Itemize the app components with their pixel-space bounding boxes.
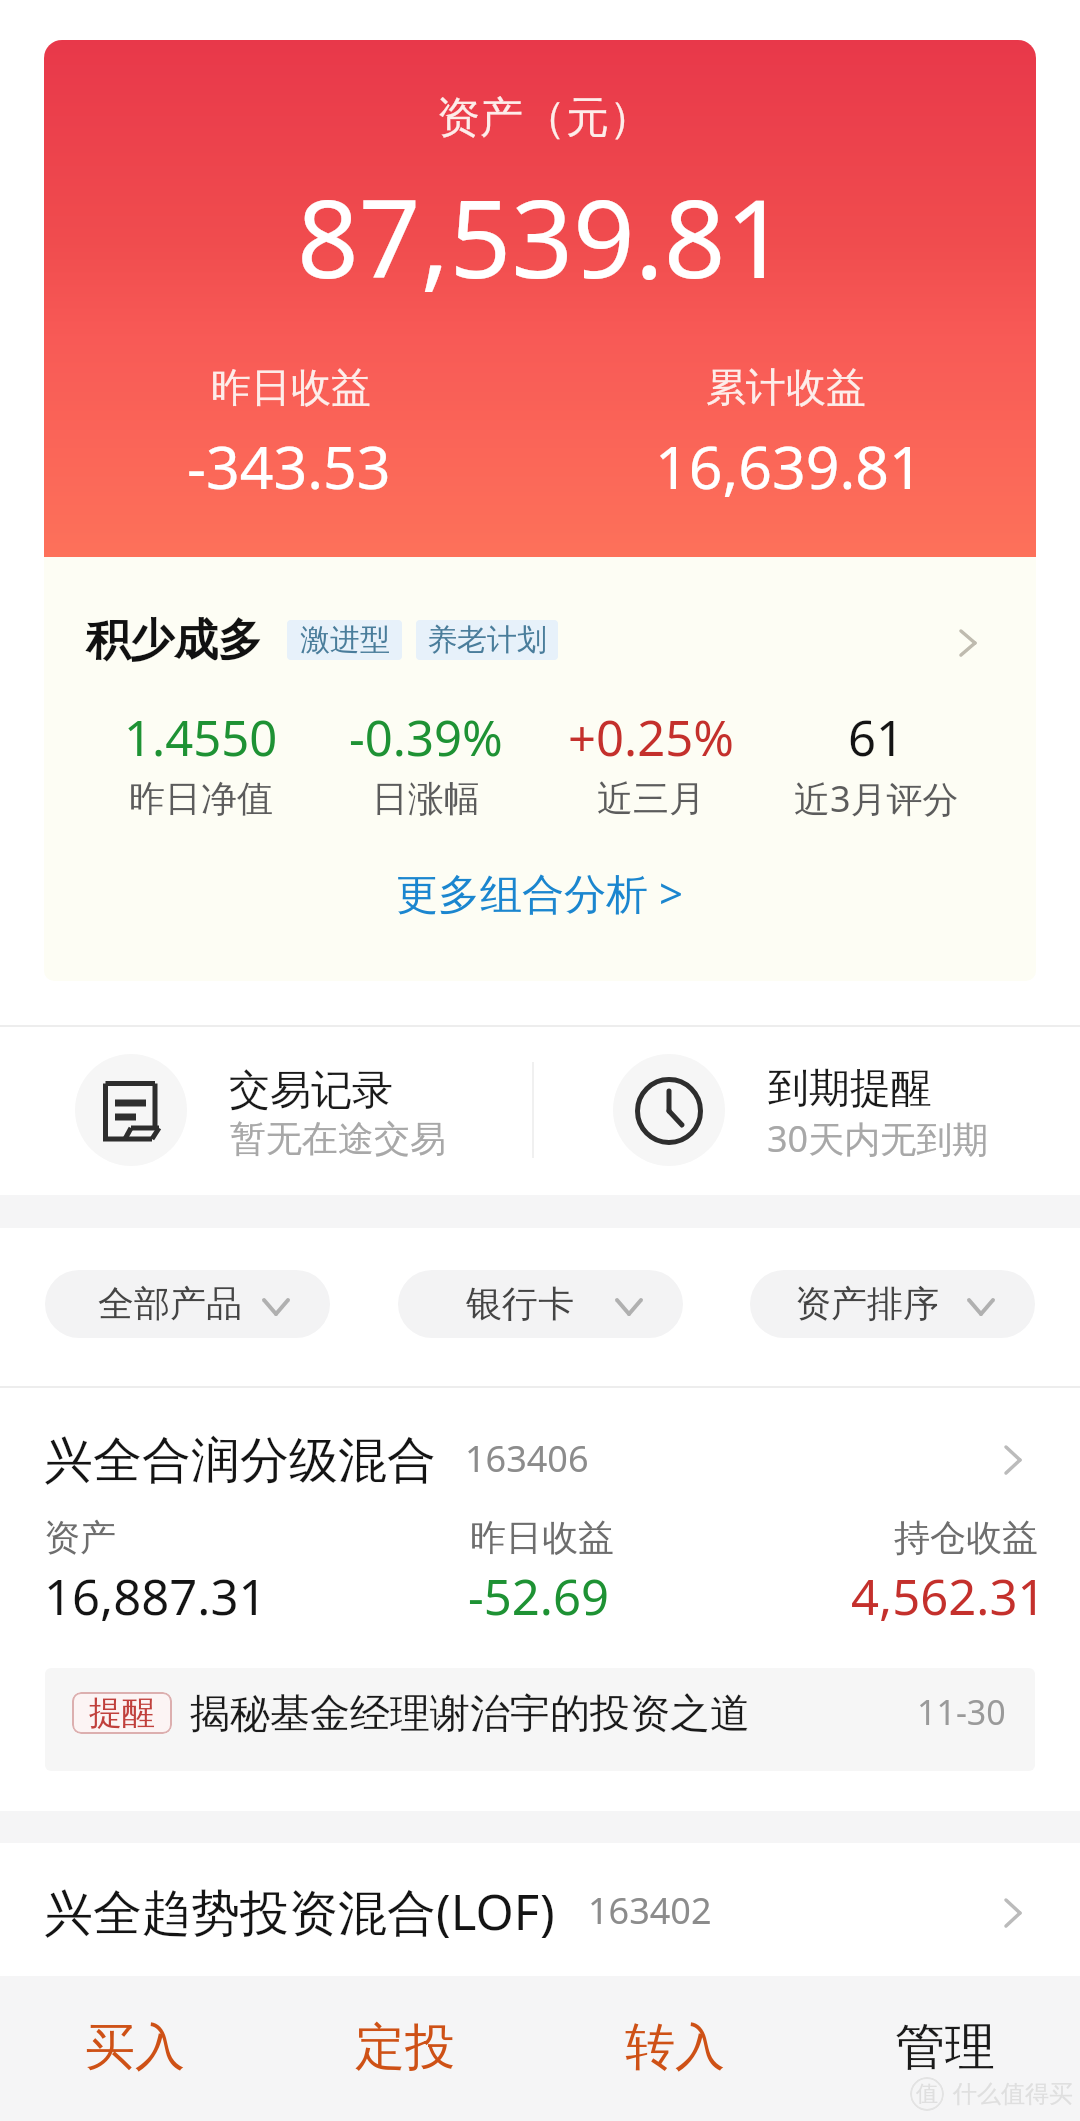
staticText: -52.69 — [468, 1563, 610, 1630]
staticText: 日涨幅 — [372, 776, 480, 821]
staticText: 昨日净值 — [129, 776, 273, 821]
staticText: 什么值得买 — [953, 2079, 1073, 2109]
other: Watermark — [910, 2077, 944, 2111]
button[interactable]: 转入 — [540, 1976, 810, 2121]
staticText: 揭秘基金经理谢治宇的投资之道 — [190, 1688, 750, 1738]
staticText: 暂无在途交易 — [230, 1116, 446, 1161]
staticText: 16,887.31 — [44, 1563, 267, 1630]
staticText: 11-30 — [917, 1689, 1006, 1735]
button[interactable]: 管理 — [810, 1976, 1080, 2121]
staticText: 30天内无到期 — [767, 1114, 989, 1163]
staticText: -0.39% — [349, 704, 503, 771]
staticText: +0.25% — [568, 704, 734, 771]
staticText: 163406 — [465, 1434, 589, 1483]
staticText: 61 — [848, 704, 905, 771]
button[interactable]: 更多组合分析 > — [389, 857, 689, 927]
staticText: 管理 — [895, 2016, 995, 2079]
staticText: 养老计划 — [427, 621, 547, 659]
staticText: 昨日收益 — [211, 362, 371, 412]
staticText: 更多组合分析 > — [396, 864, 683, 921]
button[interactable]: 提醒 — [45, 1668, 1035, 1771]
staticText: -343.53 — [187, 426, 391, 506]
staticText: 近三月 — [597, 776, 705, 821]
staticText: 银行卡 — [466, 1281, 574, 1326]
staticText: 转入 — [625, 2016, 725, 2079]
staticText: 兴全合润分级混合 — [44, 1430, 436, 1492]
button[interactable]: 资产（元） — [44, 40, 1036, 981]
staticText: 持仓收益 — [894, 1515, 1038, 1560]
staticText: 资产排序 — [795, 1281, 939, 1326]
staticText: 积少成多 — [86, 613, 262, 668]
staticText: 值 — [916, 2080, 938, 2108]
button[interactable]: 到期提醒 — [540, 1027, 1080, 1195]
button[interactable]: 银行卡 — [398, 1270, 683, 1338]
staticText: 163402 — [588, 1886, 712, 1935]
staticText: 全部产品 — [98, 1281, 242, 1326]
staticText: 累计收益 — [706, 362, 866, 412]
staticText: 交易记录 — [229, 1065, 393, 1117]
staticText: 定投 — [355, 2016, 455, 2079]
button[interactable]: 交易记录 — [0, 1027, 540, 1195]
staticText: 资产 — [44, 1515, 116, 1560]
staticText: 昨日收益 — [470, 1515, 614, 1560]
button[interactable]: 买入 — [0, 1976, 270, 2121]
staticText: 买入 — [85, 2016, 185, 2079]
staticText: 近3月评分 — [794, 774, 959, 823]
staticText: 87,539.81 — [297, 163, 788, 310]
button[interactable]: 资产排序 — [750, 1270, 1035, 1338]
staticText: 兴全趋势投资混合(LOF) — [44, 1878, 555, 1945]
staticText: 4,562.31 — [851, 1563, 1046, 1630]
staticText: 1.4550 — [124, 704, 278, 771]
button[interactable]: 全部产品 — [45, 1270, 330, 1338]
staticText: 资产（元） — [437, 91, 652, 145]
staticText: 到期提醒 — [768, 1063, 932, 1115]
staticText: 激进型 — [300, 621, 390, 659]
button[interactable]: 兴全合润分级混合 — [0, 1389, 1080, 1660]
button[interactable]: 定投 — [270, 1976, 540, 2121]
button[interactable]: 兴全趋势投资混合(LOF) — [0, 1843, 1080, 1976]
staticText: 16,639.81 — [655, 426, 923, 506]
staticText: 提醒 — [89, 1692, 155, 1734]
